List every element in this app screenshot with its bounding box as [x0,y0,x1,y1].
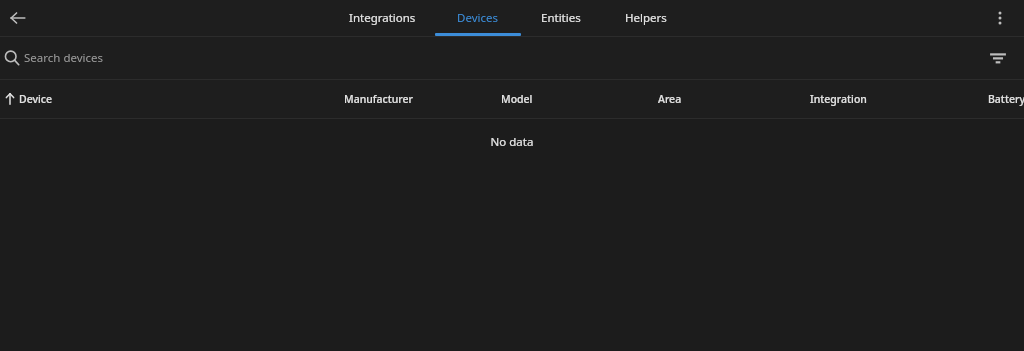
staticText: Manufacturer [344,92,414,106]
staticText: Search devices [24,50,104,66]
button[interactable]: Device [0,80,53,118]
button[interactable]: Integration [810,80,867,118]
staticText: Helpers [625,10,667,26]
button[interactable]: Integrations [332,0,433,36]
button[interactable]: More options [982,0,1018,36]
staticText: No data [0,134,1024,150]
button[interactable]: Back [0,0,36,36]
staticText: Battery [988,92,1024,106]
staticText: Integrations [349,10,416,26]
staticText: Model [501,92,533,106]
staticText: Integration [810,92,867,106]
button[interactable]: Manufacturer [344,80,414,118]
button[interactable]: Battery [988,80,1024,118]
staticText: Devices [457,10,498,26]
button[interactable]: Entities [523,0,598,36]
button[interactable]: Devices [443,0,512,36]
button[interactable]: Model [501,80,533,118]
button[interactable]: Area [658,80,682,118]
button[interactable]: Search devices [0,37,1024,79]
staticText: Area [658,92,682,106]
button[interactable]: Filter [980,40,1016,76]
staticText: Device [19,92,53,106]
button[interactable]: Helpers [611,0,680,36]
staticText: Entities [541,10,581,26]
